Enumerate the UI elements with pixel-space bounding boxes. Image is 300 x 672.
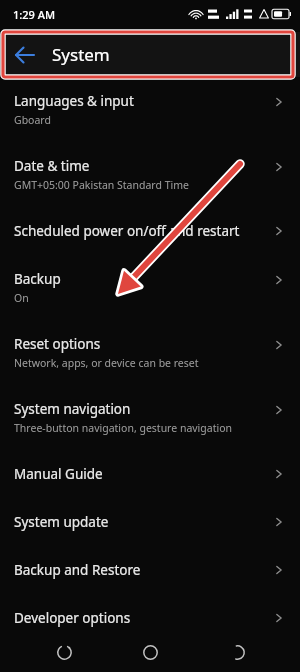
staticText: System navigation [14, 400, 131, 418]
staticText: Three-button navigation, gesture navigat… [14, 421, 233, 435]
staticText: Languages & input [14, 92, 134, 110]
button[interactable]: Reset options [0, 320, 300, 385]
button[interactable]: Recents [41, 632, 87, 672]
button[interactable]: Languages & input [0, 77, 300, 142]
staticText: On [14, 291, 29, 305]
button[interactable]: Backup [0, 255, 300, 320]
staticText: Gboard [14, 113, 51, 127]
button[interactable]: Date & time [0, 142, 300, 207]
staticText: System [52, 43, 110, 66]
button[interactable]: Scheduled power on/off and restart [0, 207, 300, 255]
staticText: Backup and Restore [14, 561, 141, 579]
button[interactable]: System navigation [0, 385, 300, 450]
staticText: System update [14, 513, 109, 531]
button[interactable]: Backup and Restore [0, 546, 300, 594]
button[interactable]: Back [0, 32, 300, 77]
button[interactable]: Developer options [0, 594, 300, 642]
button[interactable]: System update [0, 498, 300, 546]
staticText: Developer options [14, 609, 131, 627]
button[interactable]: Manual Guide [0, 450, 300, 498]
staticText: Scheduled power on/off and restart [14, 222, 240, 240]
staticText: Manual Guide [14, 465, 103, 483]
button[interactable]: Back [14, 44, 36, 66]
staticText: Date & time [14, 157, 90, 175]
staticText: Backup [14, 270, 61, 288]
staticText: GMT+05:00 Pakistan Standard Time [14, 178, 189, 192]
button[interactable]: Home [127, 632, 173, 672]
staticText: 1:29 AM [13, 7, 56, 22]
button[interactable]: Back [214, 632, 260, 672]
staticText: Network, apps, or device can be reset [14, 356, 199, 370]
staticText: Reset options [14, 335, 101, 353]
